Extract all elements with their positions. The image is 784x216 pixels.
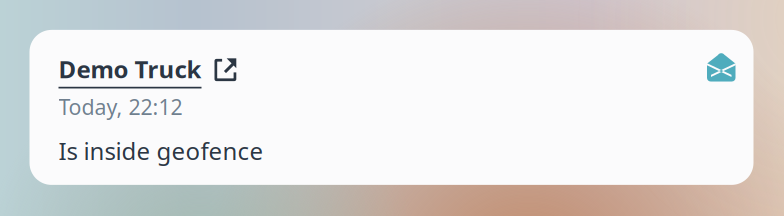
staticText: Demo Truck [58, 53, 201, 85]
staticText: Today, 22:12 [58, 92, 182, 121]
staticText: Is inside geofence [58, 135, 263, 167]
button[interactable]: Demo Truck [58, 53, 383, 88]
